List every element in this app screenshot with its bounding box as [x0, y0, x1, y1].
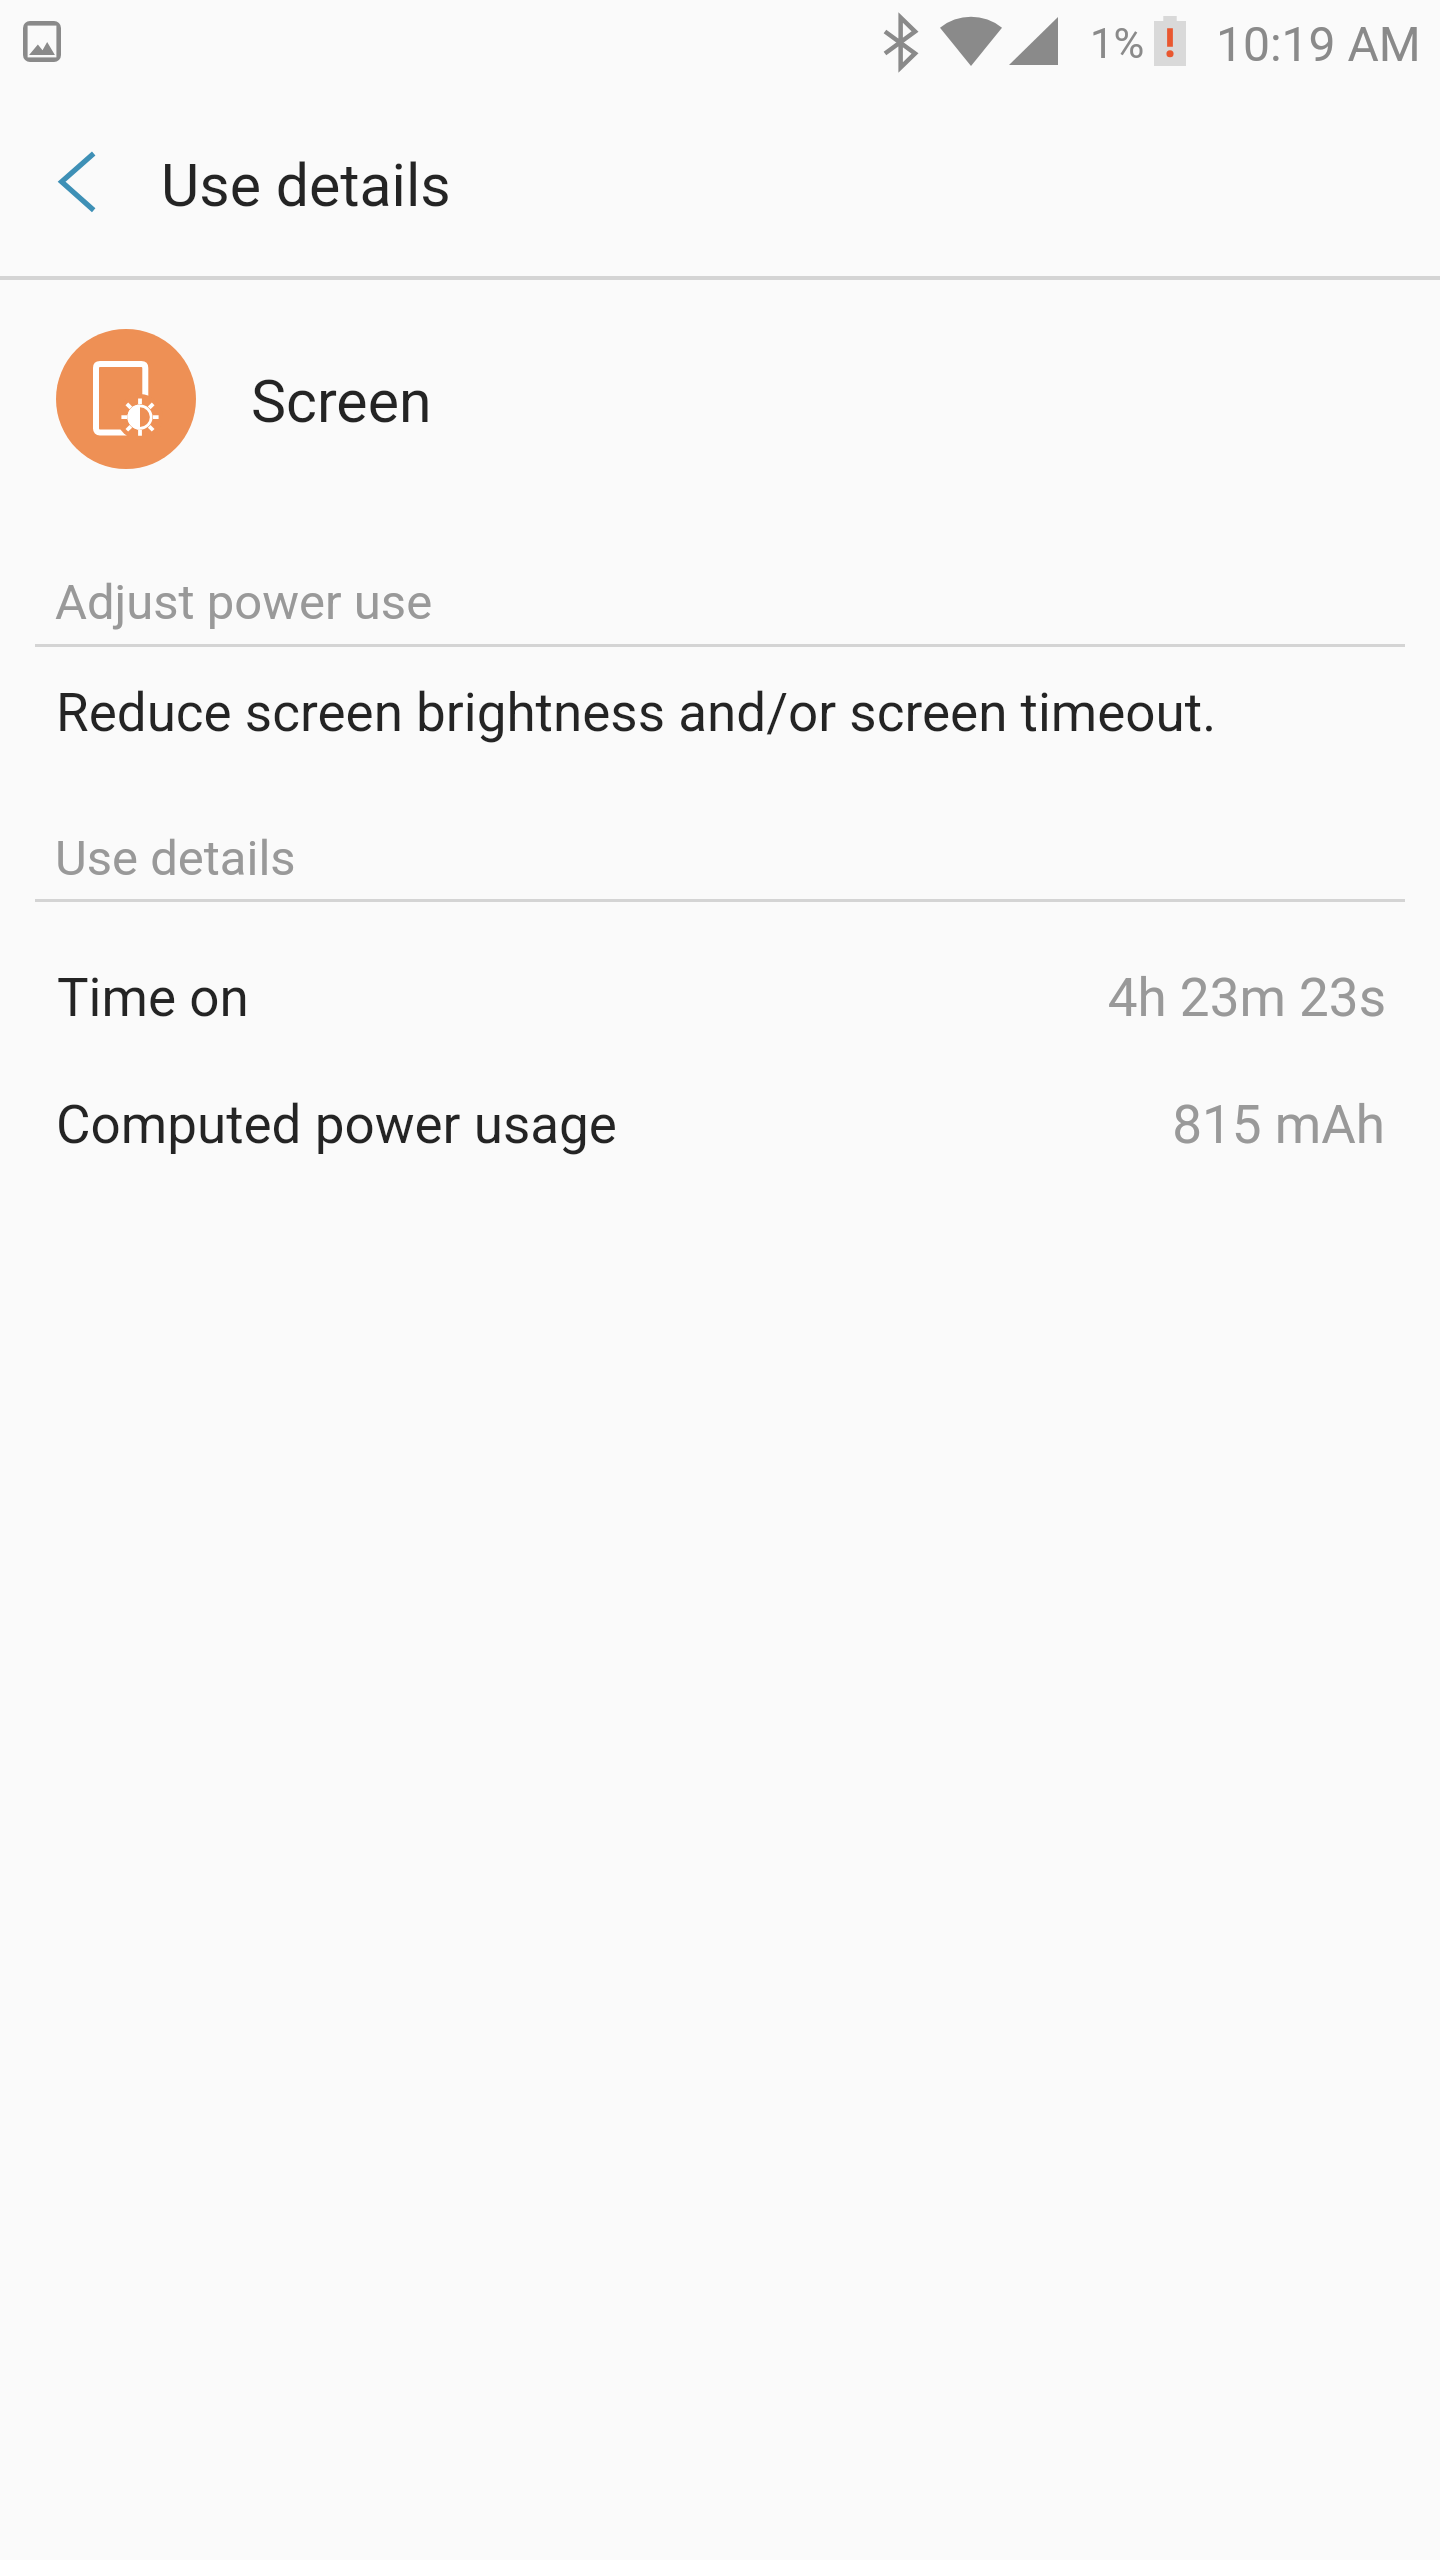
- staticText: Computed power usage: [56, 1094, 617, 1156]
- button[interactable]: Screen: [0, 300, 1440, 530]
- button[interactable]: Computed power usage: [0, 1056, 1440, 1182]
- staticText: Use details: [161, 151, 451, 220]
- staticText: Time on: [57, 967, 249, 1029]
- button[interactable]: Navigate up: [28, 130, 132, 234]
- staticText: 1%: [1090, 19, 1145, 68]
- staticText: 815 mAh: [1172, 1094, 1385, 1156]
- staticText: 10:19 AM: [1216, 16, 1421, 72]
- staticText: 4h 23m 23s: [1107, 967, 1386, 1029]
- button[interactable]: Time on: [0, 930, 1440, 1056]
- staticText: Reduce screen brightness and/or screen t…: [56, 682, 1217, 744]
- button[interactable]: Reduce screen brightness and/or screen t…: [0, 660, 1440, 790]
- staticText: Use details: [55, 830, 296, 887]
- staticText: Adjust power use: [55, 574, 433, 631]
- staticText: Screen: [251, 367, 432, 436]
